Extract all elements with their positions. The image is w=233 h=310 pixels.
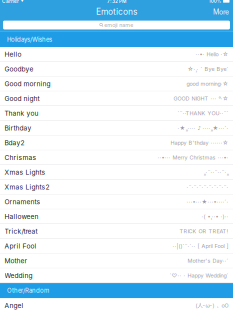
button[interactable]: Trick/treat xyxy=(0,224,233,239)
button[interactable]: Goodbye xyxy=(0,62,233,77)
staticText: ´♡·· · Happy Wedding´ xyxy=(169,272,228,279)
staticText: ·( •¸··• ·)·· xyxy=(201,213,228,220)
staticText: 100% xyxy=(209,0,222,4)
staticText: Trick/treat xyxy=(5,227,38,235)
staticText: emoji name xyxy=(104,22,133,28)
staticText: ▼ xyxy=(19,0,24,4)
staticText: Thank you xyxy=(5,109,39,117)
staticText: ☆·¸· ´ Bye Bye´ xyxy=(187,66,228,72)
button[interactable]: Wedding xyxy=(0,268,233,283)
staticText: Emoticons xyxy=(96,6,137,17)
staticText: Angel xyxy=(5,301,24,309)
button[interactable]: Mother xyxy=(0,254,233,268)
staticText: Halloween xyxy=(5,212,39,221)
button[interactable]: Hello xyxy=(0,47,233,62)
staticText: Birthday xyxy=(5,124,32,132)
staticText: Bday2 xyxy=(5,139,25,147)
staticText: April Fool xyxy=(5,242,37,250)
button[interactable]: Good night xyxy=(0,91,233,106)
staticText: Mother xyxy=(5,257,28,265)
staticText: 7:32 PM xyxy=(107,0,126,4)
button[interactable]: Chrismas xyxy=(0,150,233,165)
staticText: ··•··· Merry Christmas ···•· xyxy=(157,154,228,161)
staticText: ¸¸·¨··¨··¨·¸¸ xyxy=(203,169,228,175)
button[interactable]: Angel xyxy=(0,298,233,310)
staticText: ·★¸¸···· ♪ ····¸¸★···´· xyxy=(177,125,228,131)
staticText: Chrismas xyxy=(5,153,37,162)
button[interactable]: April Fool xyxy=(0,239,233,254)
staticText: ·¨·¨·¨·¨·¨·¨·¨·¨· xyxy=(186,184,228,190)
staticText: Ornaments xyxy=(5,198,41,206)
button[interactable]: emoji name xyxy=(0,17,233,32)
staticText: Goodbye xyxy=(5,65,34,73)
button[interactable]: Halloween xyxy=(0,209,233,224)
button[interactable]: Xmas Lights2 xyxy=(0,180,233,195)
button[interactable]: Xmas Lights xyxy=(0,165,233,180)
staticText: ··|()´¨·´·· [ April Fool ] xyxy=(172,243,228,249)
staticText: GOOD NIGHT ··· °·☆ xyxy=(173,95,228,102)
button[interactable]: Good morning xyxy=(0,77,233,91)
button[interactable]: Thank you xyxy=(0,106,233,121)
staticText: Happy B'thday ······☆ xyxy=(170,139,228,146)
staticText: good morning·☆ xyxy=(186,80,228,87)
staticText: Good night xyxy=(5,94,40,103)
staticText: Other/Random xyxy=(7,287,49,294)
staticText: (人-ω-) 。оO xyxy=(195,302,228,309)
staticText: TRICK OR TREAT! xyxy=(179,228,228,234)
staticText: ´¨··THANK YOU··¨´ xyxy=(177,110,228,116)
button[interactable]: Ornaments xyxy=(0,195,233,209)
staticText: Xmas Lights xyxy=(5,168,46,176)
staticText: Good morning xyxy=(5,80,51,88)
button[interactable]: More xyxy=(209,6,233,18)
staticText: More xyxy=(213,8,229,16)
button[interactable]: Birthday xyxy=(0,121,233,136)
staticText: Holidays/Wishes xyxy=(7,36,52,43)
staticText: Mother's Day··´ xyxy=(187,257,228,264)
staticText: Wedding xyxy=(5,271,33,280)
button[interactable]: Bday2 xyxy=(0,136,233,150)
staticText: ··•· Hello ·☆ xyxy=(195,51,228,57)
staticText: Hello xyxy=(5,50,22,58)
staticText: Xmas Lights2 xyxy=(5,183,50,191)
staticText: ···•···★···•····´· xyxy=(186,198,228,205)
staticText: Carrier xyxy=(2,0,19,4)
